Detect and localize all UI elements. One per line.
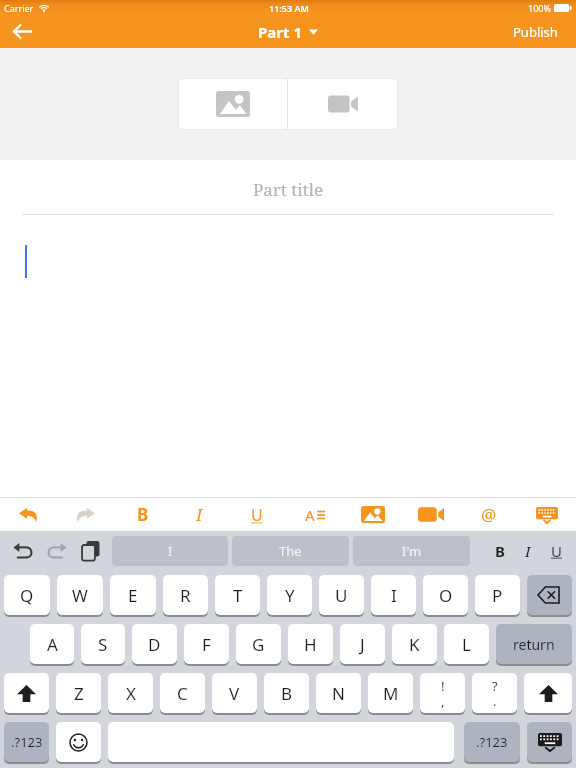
staticText: I: [391, 584, 397, 607]
button[interactable]: O: [423, 575, 468, 616]
staticText: !: [441, 677, 445, 695]
button[interactable]: !: [420, 673, 465, 714]
button[interactable]: U: [228, 498, 286, 531]
button[interactable]: [57, 498, 114, 531]
button[interactable]: .?123: [464, 722, 520, 763]
staticText: A: [305, 505, 315, 525]
staticText: Publish: [513, 23, 558, 41]
button[interactable]: S: [81, 624, 125, 665]
button[interactable]: R: [163, 575, 208, 616]
staticText: C: [177, 682, 188, 705]
staticText: Carrier: [4, 2, 34, 14]
button[interactable]: T: [215, 575, 260, 616]
button[interactable]: B: [114, 498, 171, 531]
button[interactable]: P: [475, 575, 520, 616]
staticText: 11:53 AM: [269, 2, 309, 14]
button[interactable]: [402, 498, 460, 531]
button[interactable]: B: [264, 673, 309, 714]
staticText: N: [332, 682, 345, 705]
staticText: I: [168, 542, 173, 560]
button[interactable]: A: [30, 624, 74, 665]
staticText: F: [202, 633, 211, 656]
button[interactable]: I: [514, 531, 542, 571]
button[interactable]: F: [184, 624, 229, 665]
staticText: K: [409, 633, 420, 656]
button[interactable]: ?: [472, 673, 517, 714]
button[interactable]: I: [171, 498, 228, 531]
button[interactable]: U: [319, 575, 364, 616]
staticText: Z: [74, 682, 84, 705]
button[interactable]: X: [108, 673, 153, 714]
button[interactable]: The: [232, 536, 349, 566]
button[interactable]: return: [496, 624, 572, 665]
button[interactable]: [4, 673, 49, 714]
staticText: I'm: [402, 542, 422, 560]
staticText: U: [551, 541, 562, 561]
staticText: 100%: [528, 2, 551, 14]
staticText: I: [196, 503, 203, 526]
button[interactable]: [6, 531, 40, 571]
button[interactable]: G: [236, 624, 281, 665]
button[interactable]: @: [460, 498, 518, 531]
button[interactable]: Part 1: [258, 22, 318, 42]
button[interactable]: [344, 498, 402, 531]
button[interactable]: K: [392, 624, 437, 665]
button[interactable]: Z: [56, 673, 101, 714]
button[interactable]: V: [212, 673, 257, 714]
button[interactable]: [74, 531, 108, 571]
staticText: U: [335, 584, 348, 607]
button[interactable]: U: [542, 531, 570, 571]
staticText: Y: [285, 584, 295, 607]
button[interactable]: D: [132, 624, 177, 665]
button[interactable]: E: [110, 575, 156, 616]
staticText: B: [281, 682, 293, 705]
button[interactable]: J: [340, 624, 385, 665]
staticText: Part title: [253, 178, 324, 201]
staticText: X: [126, 682, 136, 705]
button[interactable]: [527, 722, 572, 763]
staticText: L: [462, 633, 471, 656]
button[interactable]: Q: [4, 575, 50, 616]
button[interactable]: [524, 673, 572, 714]
staticText: B: [495, 541, 505, 561]
button[interactable]: L: [444, 624, 489, 665]
staticText: M: [383, 682, 399, 705]
staticText: U: [251, 504, 263, 526]
button[interactable]: [108, 722, 454, 763]
staticText: G: [252, 633, 265, 656]
button[interactable]: N: [316, 673, 361, 714]
button[interactable]: A: [286, 498, 344, 531]
staticText: J: [360, 633, 365, 656]
staticText: S: [98, 633, 108, 656]
button[interactable]: I: [112, 536, 228, 566]
staticText: @: [481, 503, 497, 526]
button[interactable]: B: [486, 531, 514, 571]
staticText: E: [128, 584, 138, 607]
button[interactable]: [179, 79, 287, 129]
button[interactable]: .?123: [4, 722, 49, 763]
staticText: H: [304, 633, 317, 656]
button[interactable]: [40, 531, 74, 571]
button[interactable]: [0, 498, 57, 531]
button[interactable]: [527, 575, 572, 616]
button[interactable]: I'm: [353, 536, 470, 566]
staticText: O: [439, 584, 453, 607]
staticText: ,: [441, 692, 445, 710]
button[interactable]: [518, 498, 576, 531]
staticText: return: [513, 635, 555, 654]
button[interactable]: Publish: [513, 23, 576, 41]
staticText: A: [47, 633, 58, 656]
staticText: Part 1: [258, 22, 302, 42]
button[interactable]: M: [368, 673, 413, 714]
button[interactable]: Y: [267, 575, 312, 616]
button[interactable]: C: [160, 673, 205, 714]
button[interactable]: [288, 79, 397, 129]
button[interactable]: [0, 15, 44, 48]
staticText: The: [279, 542, 302, 560]
staticText: W: [72, 584, 88, 607]
button[interactable]: [56, 722, 101, 763]
button[interactable]: I: [371, 575, 416, 616]
button[interactable]: W: [57, 575, 103, 616]
button[interactable]: H: [288, 624, 333, 665]
staticText: B: [137, 503, 149, 526]
